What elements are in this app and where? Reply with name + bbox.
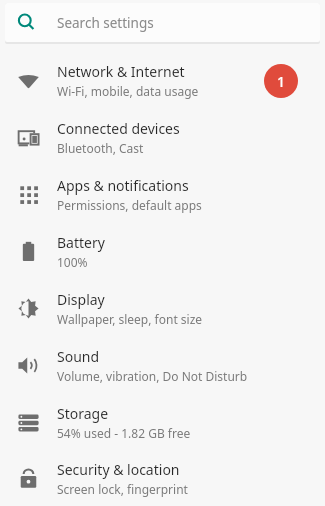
staticText: Search settings xyxy=(57,14,154,32)
staticText: Connected devices xyxy=(57,119,180,138)
staticText: Permissions, default apps xyxy=(57,197,202,213)
button[interactable]: Apps & notifications xyxy=(0,166,325,223)
staticText: Battery xyxy=(57,233,105,252)
staticText: 54% used - 1.82 GB free xyxy=(57,425,191,441)
staticText: Sound xyxy=(57,347,100,366)
other: Search xyxy=(17,13,36,32)
button[interactable]: Display xyxy=(0,280,325,337)
staticText: Network & Internet xyxy=(57,62,185,81)
button[interactable]: Connected devices xyxy=(0,109,325,166)
staticText: Bluetooth, Cast xyxy=(57,140,144,156)
staticText: Wallpaper, sleep, font size xyxy=(57,311,203,327)
button[interactable]: Network & Internet xyxy=(0,52,325,109)
staticText: Wi-Fi, mobile, data usage xyxy=(57,83,199,99)
staticText: Display xyxy=(57,290,105,309)
staticText: Apps & notifications xyxy=(57,176,189,195)
button[interactable]: Battery xyxy=(0,223,325,280)
staticText: 100% xyxy=(57,254,88,270)
staticText: 1 xyxy=(277,72,286,91)
staticText: Volume, vibration, Do Not Disturb xyxy=(57,368,248,384)
button[interactable]: Storage xyxy=(0,394,325,451)
button[interactable]: Search xyxy=(5,3,320,42)
button[interactable]: Security & location xyxy=(0,451,325,506)
staticText: Screen lock, fingerprint xyxy=(57,481,188,497)
button[interactable]: Sound xyxy=(0,337,325,394)
staticText: Security & location xyxy=(57,460,180,479)
staticText: Storage xyxy=(57,404,109,423)
